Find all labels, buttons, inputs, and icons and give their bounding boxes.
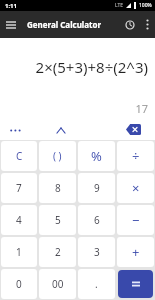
staticText: 100% (139, 2, 152, 9)
staticText: 5 (55, 213, 61, 227)
staticText: 2×(5+3)+8÷(2^3) (0, 57, 148, 77)
button[interactable]: 00 (39, 269, 76, 299)
staticText: ( ) (53, 149, 62, 163)
button[interactable]: 0 (1, 269, 37, 299)
staticText: 1:11 (5, 2, 17, 10)
staticText: 7 (16, 181, 22, 195)
staticText: + (132, 243, 140, 261)
button[interactable] (118, 270, 153, 298)
staticText: 0 (16, 277, 22, 291)
staticText: 6 (94, 213, 100, 227)
button[interactable]: 6 (78, 205, 115, 235)
button[interactable]: ( ) (39, 141, 76, 171)
button[interactable]: 4 (1, 205, 37, 235)
staticText: General Calculator (27, 19, 102, 30)
button[interactable] (0, 14, 22, 36)
button[interactable] (9, 123, 23, 137)
staticText: 9 (94, 181, 100, 195)
staticText: LTE (115, 2, 124, 9)
staticText: % (91, 147, 102, 165)
staticText: . (95, 277, 98, 291)
button[interactable]: 8 (39, 173, 76, 203)
button[interactable]: ÷ (117, 141, 154, 171)
button[interactable]: % (78, 141, 115, 171)
button[interactable]: − (117, 205, 154, 235)
button[interactable]: 3 (78, 237, 115, 267)
button[interactable]: × (117, 173, 154, 203)
staticText: 3 (94, 245, 100, 259)
staticText: × (132, 179, 140, 197)
button[interactable]: 5 (39, 205, 76, 235)
staticText: 00 (52, 277, 64, 291)
staticText: − (132, 211, 140, 229)
staticText: ÷ (132, 147, 140, 165)
button[interactable]: C (1, 141, 37, 171)
button[interactable]: 2 (39, 237, 76, 267)
button[interactable]: 1 (1, 237, 37, 267)
staticText: 4 (16, 213, 22, 227)
button[interactable] (54, 123, 68, 137)
staticText: C (16, 149, 23, 163)
staticText: 17 (0, 101, 148, 116)
button[interactable]: 7 (1, 173, 37, 203)
button[interactable]: + (117, 237, 154, 267)
staticText: 2 (55, 245, 61, 259)
button[interactable] (124, 122, 143, 137)
button[interactable]: . (78, 269, 115, 299)
staticText: 1 (16, 245, 22, 259)
button[interactable] (122, 17, 138, 33)
button[interactable]: 9 (78, 173, 115, 203)
button[interactable] (141, 18, 154, 31)
staticText: 8 (55, 181, 61, 195)
